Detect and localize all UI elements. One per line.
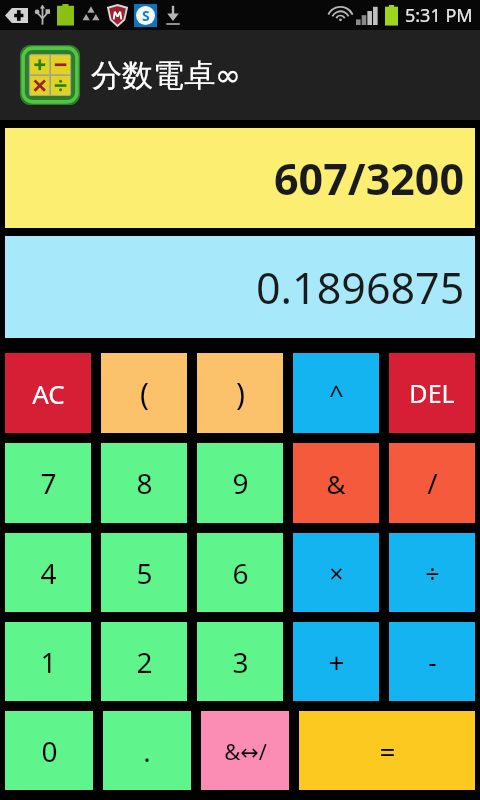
staticText: 3: [232, 643, 249, 681]
button[interactable]: AC: [5, 353, 91, 433]
staticText: +: [328, 643, 345, 681]
button[interactable]: /: [389, 443, 475, 523]
staticText: 607/3200: [274, 149, 465, 208]
button[interactable]: +: [293, 622, 379, 701]
staticText: 分数電卓∞: [91, 56, 241, 95]
staticText: ×: [329, 556, 344, 590]
button[interactable]: 607/3200: [5, 128, 475, 228]
button[interactable]: ×: [293, 533, 379, 612]
button[interactable]: 0.1896875: [5, 236, 475, 338]
staticText: 5:31 PM: [405, 3, 473, 28]
button[interactable]: &↔/: [201, 711, 289, 790]
staticText: -: [428, 644, 437, 679]
button[interactable]: DEL: [389, 353, 475, 433]
button[interactable]: &: [293, 443, 379, 523]
button[interactable]: -: [389, 622, 475, 701]
button[interactable]: .: [103, 711, 191, 790]
staticText: ÷: [425, 556, 440, 590]
staticText: (: [140, 373, 149, 414]
staticText: &↔/: [224, 736, 267, 766]
button[interactable]: 4: [5, 533, 91, 612]
staticText: 5: [136, 554, 153, 592]
button[interactable]: 2: [101, 622, 187, 701]
button[interactable]: 9: [197, 443, 283, 523]
button[interactable]: 5: [101, 533, 187, 612]
button[interactable]: ÷: [389, 533, 475, 612]
button[interactable]: ^: [293, 353, 379, 433]
staticText: 8: [136, 464, 153, 502]
staticText: 4: [40, 554, 57, 592]
button[interactable]: 7: [5, 443, 91, 523]
staticText: 2: [136, 643, 153, 681]
button[interactable]: ): [197, 353, 283, 433]
staticText: ): [236, 373, 245, 414]
staticText: /: [427, 464, 438, 502]
button[interactable]: =: [299, 711, 475, 790]
button[interactable]: 6: [197, 533, 283, 612]
staticText: &: [326, 466, 346, 501]
staticText: ^: [329, 376, 344, 411]
staticText: 9: [232, 464, 249, 502]
button[interactable]: 0: [5, 711, 93, 790]
staticText: 0: [41, 732, 58, 770]
button[interactable]: 1: [5, 622, 91, 701]
staticText: =: [379, 732, 396, 770]
staticText: 0.1896875: [256, 258, 465, 317]
button[interactable]: 8: [101, 443, 187, 523]
staticText: .: [143, 732, 151, 770]
staticText: AC: [32, 376, 65, 411]
staticText: 6: [232, 554, 249, 592]
staticText: DEL: [409, 376, 455, 410]
button[interactable]: 3: [197, 622, 283, 701]
other: App icon: [18, 43, 82, 107]
staticText: 1: [40, 643, 57, 681]
staticText: 7: [40, 464, 57, 502]
button[interactable]: (: [101, 353, 187, 433]
staticText: S: [142, 6, 150, 25]
